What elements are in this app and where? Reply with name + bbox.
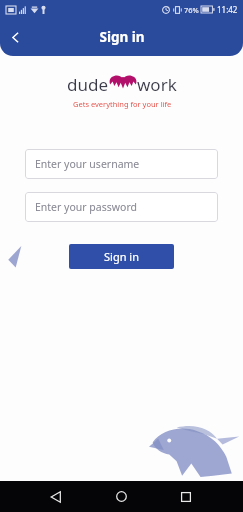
button[interactable]: Back xyxy=(0,22,30,52)
staticText: Gets everything for your life xyxy=(73,99,172,109)
staticText: Enter your username xyxy=(35,157,140,171)
staticText: Sign in xyxy=(99,28,145,46)
button[interactable]: Enter your username xyxy=(25,149,218,179)
button[interactable]: Home xyxy=(103,481,139,512)
staticText: work xyxy=(137,73,177,96)
staticText: 76% xyxy=(184,5,199,15)
staticText: dude xyxy=(67,73,109,96)
staticText: Enter your password xyxy=(35,200,137,214)
staticText: Sign in xyxy=(104,249,139,264)
staticText: 11:42 xyxy=(217,4,238,15)
button[interactable]: Sign in xyxy=(69,244,174,269)
button[interactable]: Enter your password xyxy=(25,192,218,222)
button[interactable]: Recent apps xyxy=(168,481,204,512)
button[interactable]: Back xyxy=(38,481,74,512)
